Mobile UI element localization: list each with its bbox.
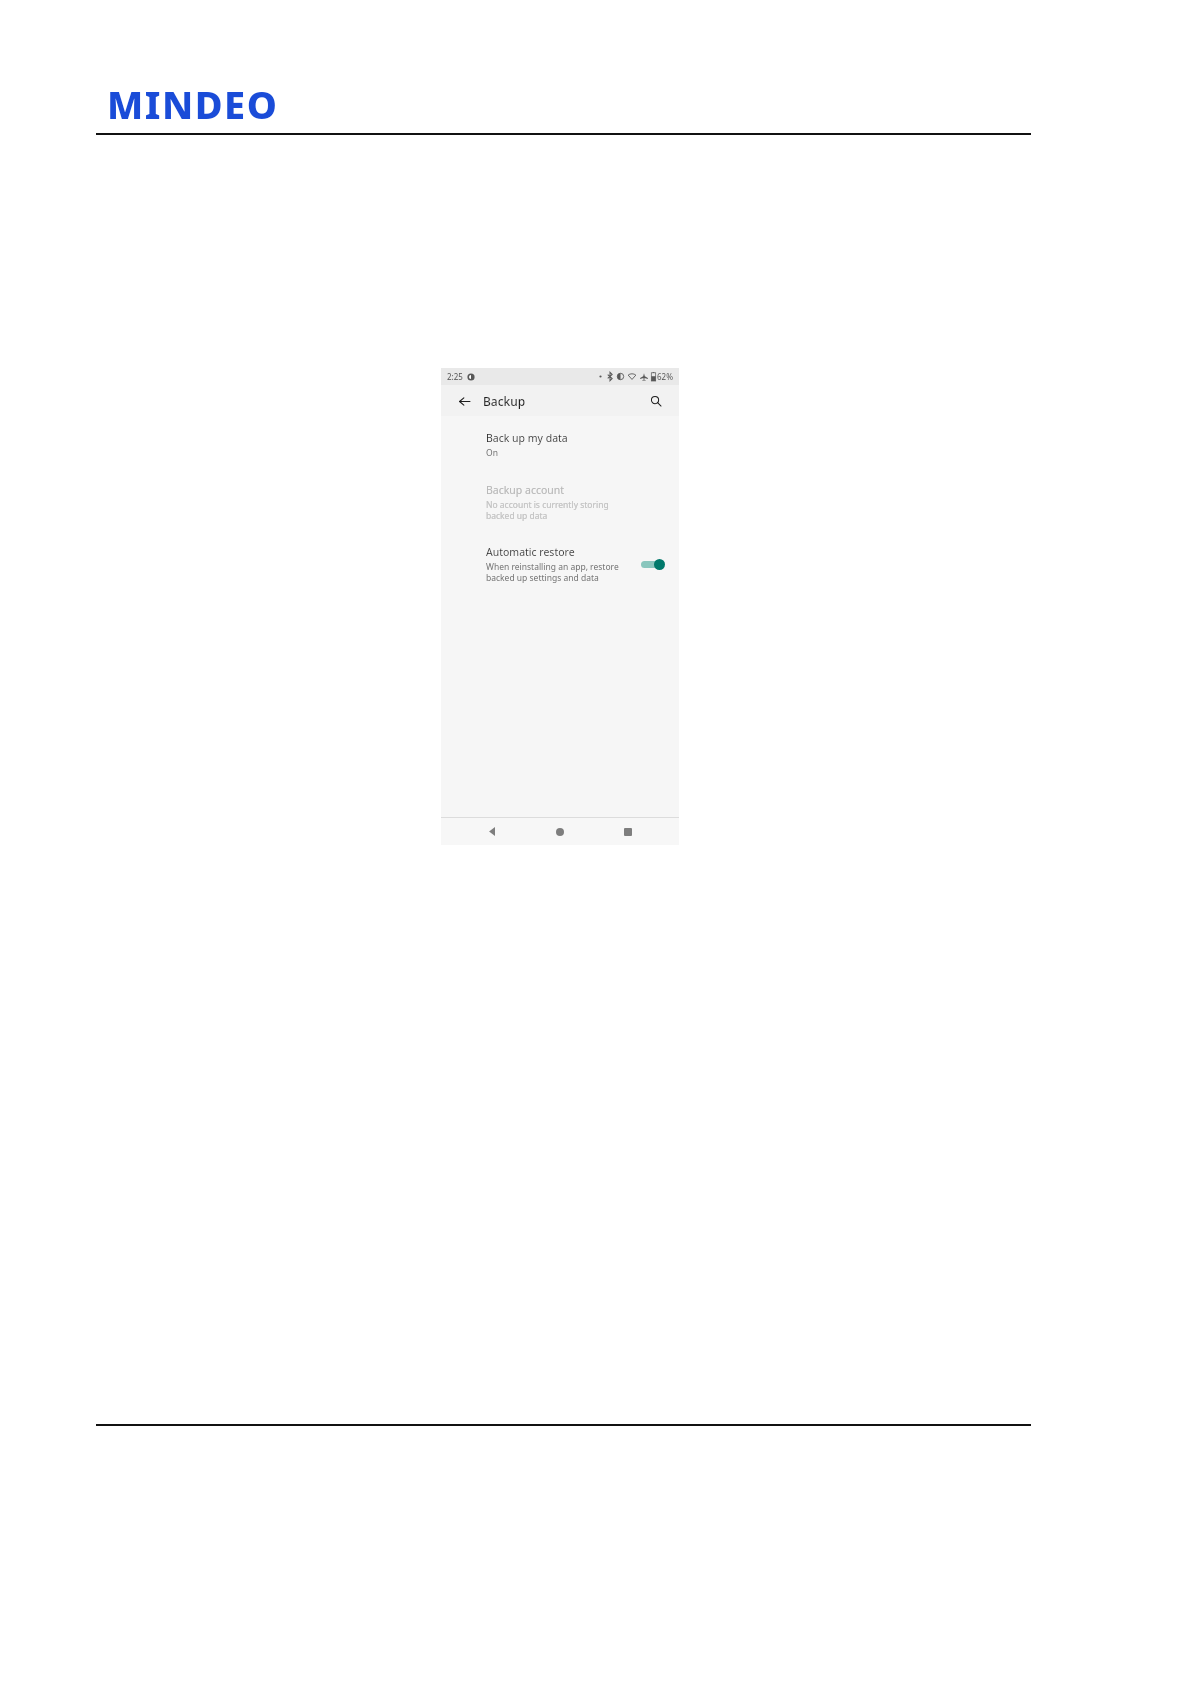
- button[interactable]: Home: [543, 818, 577, 845]
- staticText: Automatic restore: [486, 545, 575, 559]
- staticText: MINDEO: [107, 78, 279, 130]
- staticText: Back up my data: [486, 431, 568, 445]
- staticText: 62%: [657, 371, 673, 382]
- staticText: 2:25: [447, 371, 463, 382]
- staticText: On: [486, 447, 498, 459]
- button[interactable]: Back: [453, 390, 475, 412]
- staticText: Backup: [483, 393, 526, 409]
- staticText: When reinstalling an app, restore backed…: [486, 561, 633, 583]
- button[interactable]: Automatic restore toggle: [639, 556, 665, 572]
- button[interactable]: Search: [645, 390, 667, 412]
- button[interactable]: Automatic restore: [441, 543, 679, 585]
- button[interactable]: Back up my data: [441, 429, 679, 461]
- button[interactable]: Back: [475, 818, 509, 845]
- button[interactable]: Recent apps: [611, 818, 645, 845]
- staticText: No account is currently storing backed u…: [486, 499, 639, 521]
- staticText: Backup account: [486, 483, 565, 497]
- button[interactable]: Backup account: [441, 481, 679, 523]
